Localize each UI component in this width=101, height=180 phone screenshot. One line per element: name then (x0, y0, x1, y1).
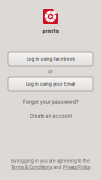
staticText: Log in using Facebook (26, 56, 74, 62)
button[interactable]: Forgot your password? (23, 99, 78, 105)
button[interactable]: Log in using Facebook (8, 52, 93, 66)
button[interactable]: Privacy Policy (63, 165, 90, 170)
staticText: Log in using your Email (26, 81, 75, 87)
staticText: Terms & Conditions (11, 165, 52, 170)
staticText: Forgot your password? (23, 99, 78, 105)
button[interactable]: Create an account (29, 113, 71, 119)
staticText: Privacy Policy (63, 165, 90, 170)
staticText: printfix (42, 29, 58, 34)
staticText: and (53, 165, 61, 170)
staticText: or (48, 69, 53, 74)
button[interactable]: Terms & Conditions (11, 165, 52, 170)
staticText: Create an account (29, 113, 71, 119)
button[interactable]: Log in using your Email (8, 77, 93, 91)
staticText: By logging in you are agreeing to the (11, 158, 90, 164)
